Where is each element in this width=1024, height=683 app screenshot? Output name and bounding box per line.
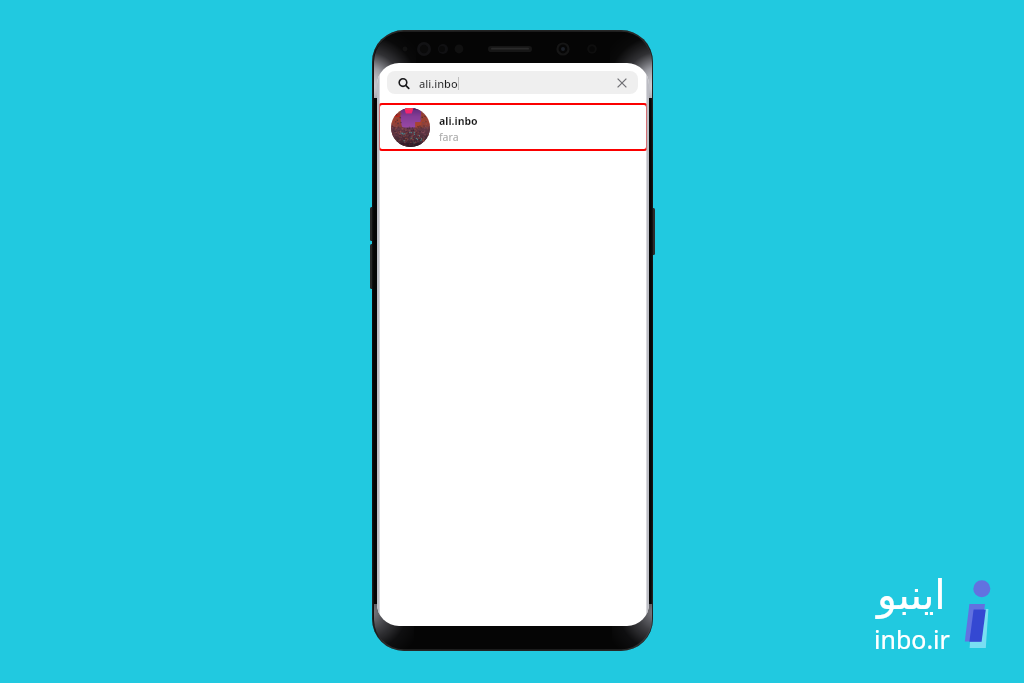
button[interactable]: ali.inbo (387, 71, 638, 94)
staticText: fara (439, 130, 459, 144)
staticText: ali.inbo (439, 114, 478, 128)
staticText: inbo.ir (874, 622, 950, 656)
staticText: ali.inbo (419, 76, 458, 91)
button[interactable]: Clear search (614, 75, 630, 91)
staticText: اینبو (877, 571, 946, 619)
button[interactable]: ali.inbo (378, 103, 648, 151)
